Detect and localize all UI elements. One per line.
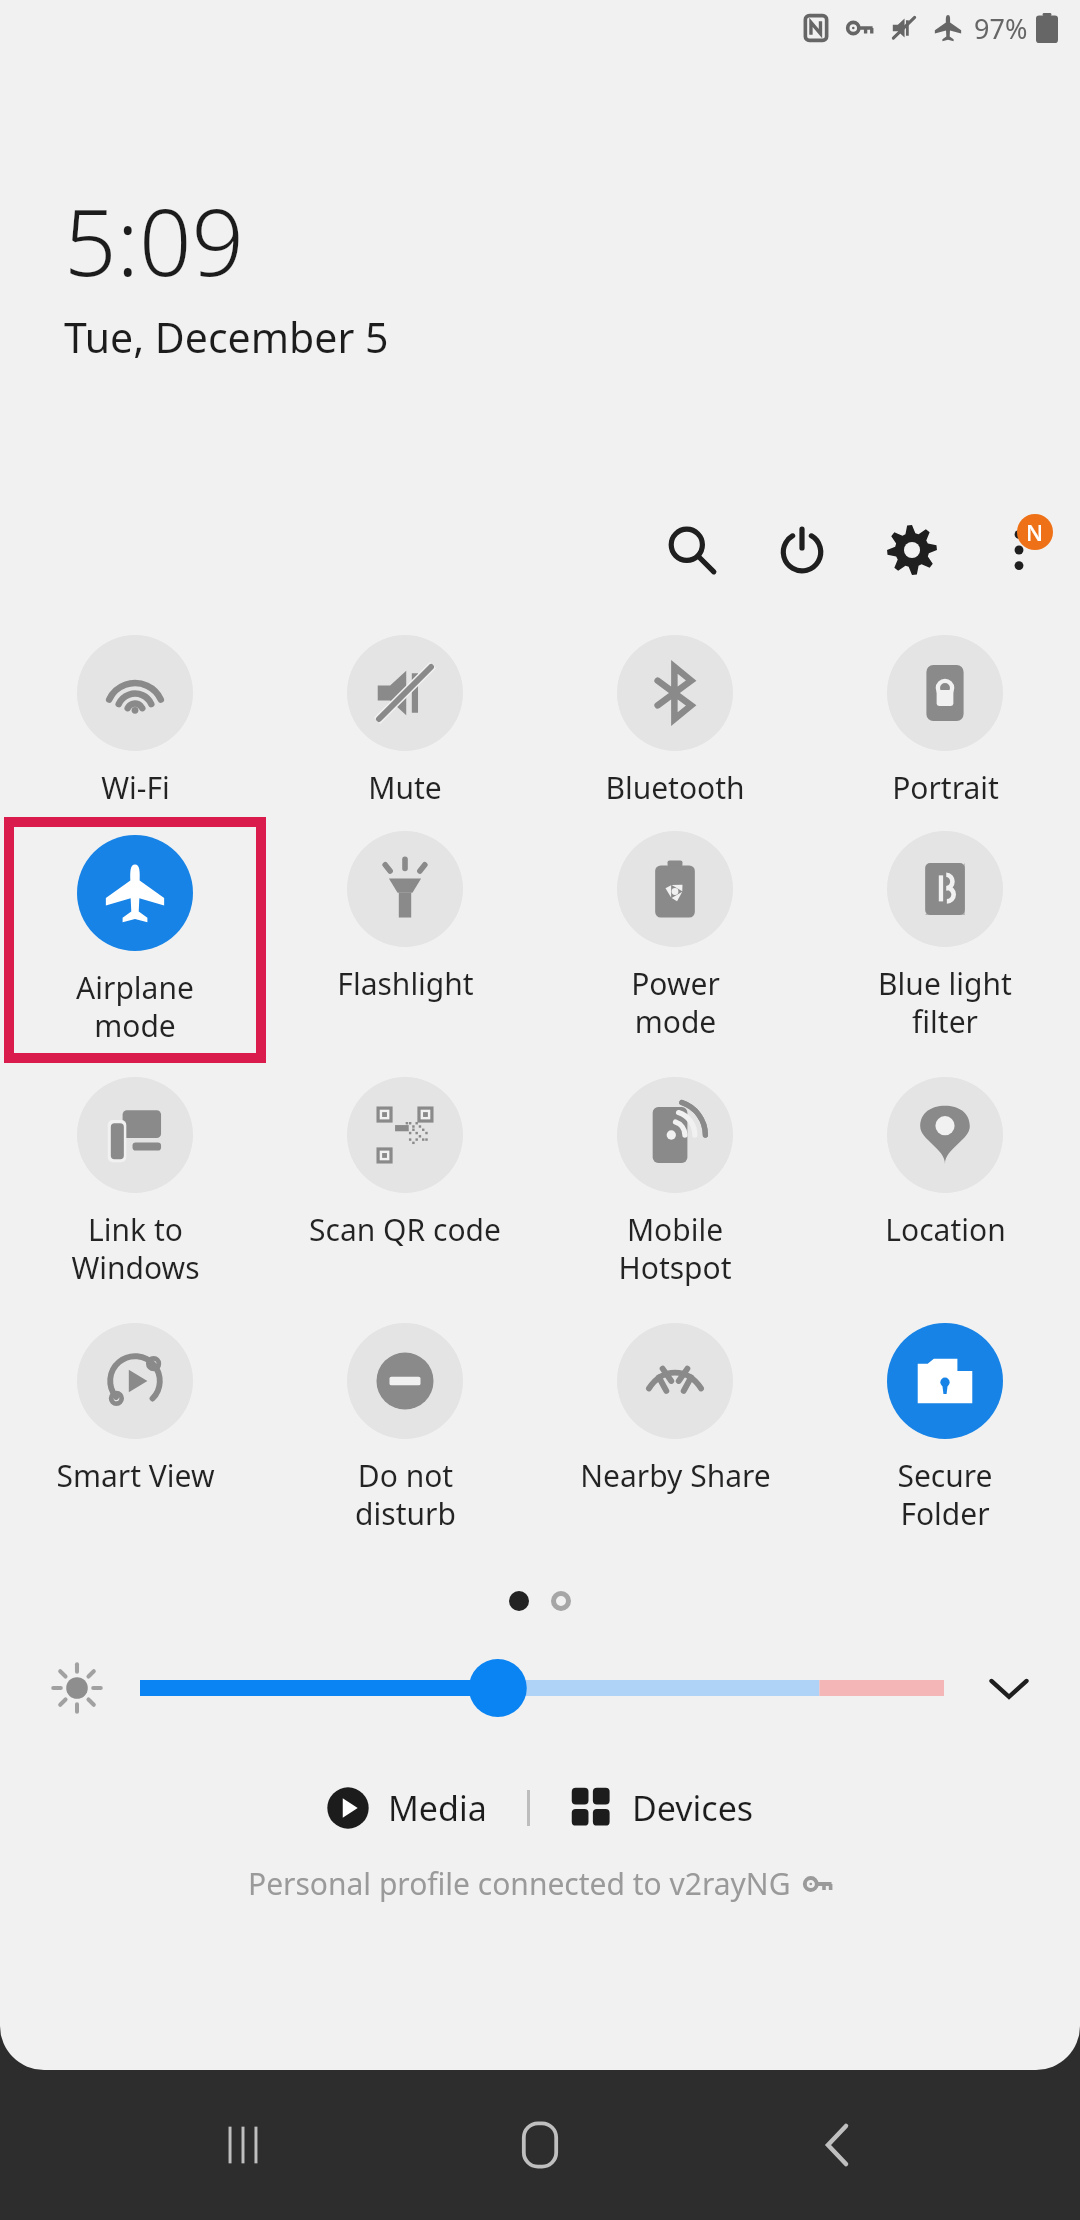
staticText: Mute — [368, 767, 442, 808]
button[interactable]: Power mode — [540, 817, 810, 1063]
staticText: Devices — [632, 1785, 754, 1831]
button[interactable]: Portrait — [810, 621, 1080, 817]
staticText: Tue, December 5 — [64, 309, 389, 365]
button[interactable]: Wi-Fi — [0, 621, 270, 817]
button[interactable]: Mobile Hotspot — [540, 1063, 810, 1309]
staticText: Power mode — [631, 963, 720, 1042]
staticText: Bluetooth — [605, 767, 745, 808]
button[interactable]: Scan QR code — [270, 1063, 540, 1309]
button[interactable]: Smart View — [0, 1309, 270, 1555]
staticText: Blue light filter — [878, 963, 1012, 1042]
button[interactable]: Bluetooth — [540, 621, 810, 817]
staticText: Secure Folder — [897, 1455, 993, 1534]
staticText: Link to Windows — [71, 1209, 200, 1288]
staticText: Personal profile connected to v2rayNG — [248, 1863, 791, 1904]
button[interactable]: Do not disturb — [270, 1309, 540, 1555]
staticText: Smart View — [56, 1455, 215, 1496]
staticText: N — [1026, 517, 1044, 547]
staticText: Airplane mode — [76, 967, 194, 1046]
staticText: Do not disturb — [355, 1455, 456, 1534]
staticText: 5:09 — [64, 178, 245, 303]
button[interactable]: Expand brightness settings — [974, 1653, 1044, 1723]
button[interactable]: Recents — [188, 2090, 298, 2200]
staticText: Flashlight — [337, 963, 474, 1004]
button[interactable]: More options — [984, 515, 1054, 585]
button[interactable]: Location — [810, 1063, 1080, 1309]
staticText: Scan QR code — [309, 1209, 501, 1250]
button[interactable]: Back — [783, 2090, 893, 2200]
staticText: Media — [388, 1785, 487, 1831]
button[interactable]: Home — [485, 2090, 595, 2200]
button[interactable]: Flashlight — [270, 817, 540, 1063]
button[interactable]: Devices — [556, 1777, 768, 1839]
button[interactable]: Secure Folder — [810, 1309, 1080, 1555]
button[interactable]: Media — [312, 1777, 501, 1839]
button[interactable]: Nearby Share — [540, 1309, 810, 1555]
button[interactable]: Blue light filter — [810, 817, 1080, 1063]
button[interactable]: Power — [770, 518, 834, 582]
button[interactable]: Settings — [880, 518, 944, 582]
button[interactable]: Search — [660, 518, 724, 582]
button[interactable] — [140, 1658, 944, 1718]
staticText: Nearby Share — [580, 1455, 771, 1496]
staticText: Wi-Fi — [101, 767, 170, 808]
button[interactable]: Airplane mode — [14, 827, 256, 1053]
staticText: 97% — [974, 10, 1028, 47]
button[interactable]: Mute — [270, 621, 540, 817]
staticText: Mobile Hotspot — [618, 1209, 732, 1288]
staticText: Location — [885, 1209, 1006, 1250]
staticText: Portrait — [892, 767, 999, 808]
button[interactable]: Link to Windows — [0, 1063, 270, 1309]
